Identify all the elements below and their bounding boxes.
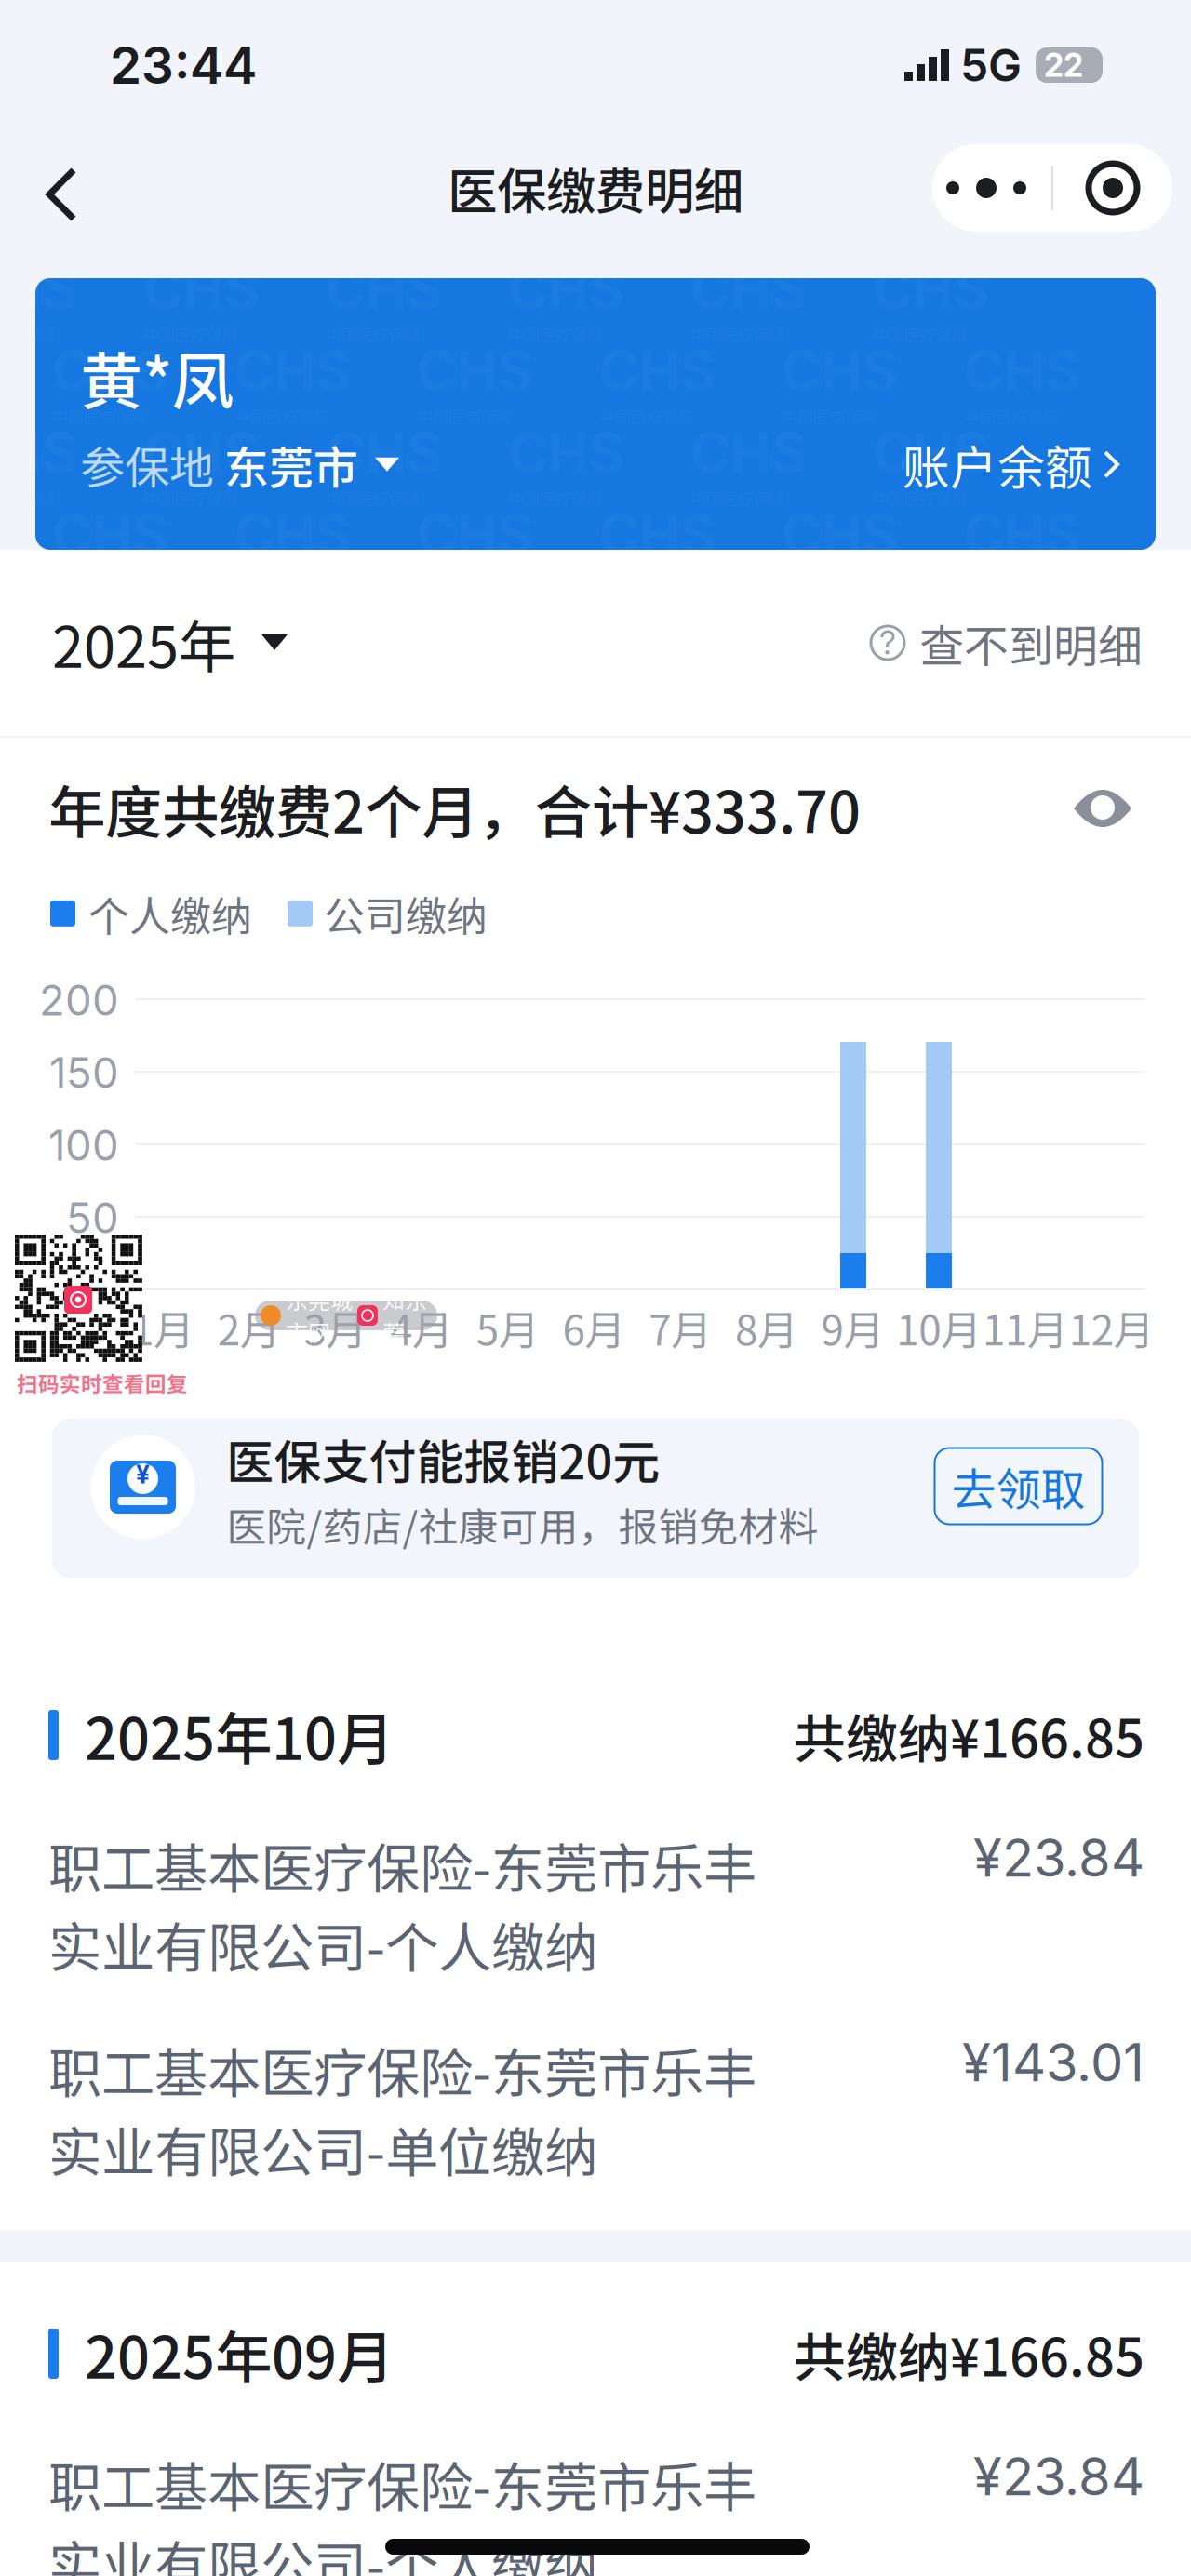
staticText: 2025年09月: [85, 2312, 394, 2395]
staticText: CHS: [873, 420, 989, 486]
staticText: CHS: [599, 501, 716, 567]
staticText: 扫码实时查看回复: [17, 1368, 188, 1398]
staticText: 2月: [217, 1298, 281, 1357]
staticText: 22: [1044, 46, 1083, 85]
staticText: 150: [49, 1047, 119, 1098]
staticText: 8月: [735, 1298, 798, 1357]
staticText: 50: [66, 1192, 119, 1243]
staticText: 知东莞: [382, 1283, 427, 1348]
staticText: 医保支付能报销20元: [227, 1425, 660, 1493]
staticText: CHS: [417, 501, 533, 567]
button[interactable]: ?: [869, 610, 1143, 675]
staticText: CHS: [52, 501, 168, 567]
staticText: 东莞城市网: [286, 1283, 353, 1348]
staticText: 中国医疗保障: [873, 487, 968, 510]
staticText: 中国医疗保障: [52, 405, 147, 428]
staticText: 中国医疗保障: [143, 487, 238, 510]
button[interactable]: 返回: [20, 137, 114, 239]
staticText: 职工基本医疗保险-东莞市乐丰 实业有限公司-个人缴纳: [48, 2445, 756, 2576]
staticText: 5月: [476, 1298, 539, 1357]
button[interactable]: 账户余额: [903, 430, 1120, 499]
staticText: 职工基本医疗保险-东莞市乐丰 实业有限公司-单位缴纳: [48, 2031, 756, 2187]
button[interactable]: ¥: [52, 1419, 1139, 1578]
staticText: 3月: [304, 1298, 367, 1357]
staticText: CHS: [0, 420, 77, 486]
button[interactable]: 参保地: [80, 432, 399, 497]
staticText: 中国医疗保障: [0, 323, 56, 346]
button[interactable]: 隐藏金额: [1072, 787, 1133, 830]
staticText: 中国医疗保障: [326, 487, 421, 510]
staticText: 参保地: [80, 432, 214, 497]
button[interactable]: 更多: [932, 144, 1051, 232]
staticText: 共缴纳¥166.85: [794, 1697, 1144, 1773]
staticText: 公司缴纳: [324, 884, 488, 943]
staticText: CHS: [234, 501, 351, 567]
staticText: CHS: [52, 338, 168, 404]
staticText: ?: [879, 623, 896, 662]
staticText: 23:44: [110, 34, 257, 96]
staticText: 账户余额: [903, 430, 1092, 499]
staticText: 年度共缴费2个月，合计¥333.70: [48, 767, 861, 850]
staticText: CHS: [0, 256, 77, 322]
staticText: 6月: [562, 1298, 626, 1357]
staticText: CHS: [508, 256, 624, 322]
staticText: 个人缴纳: [88, 884, 252, 943]
staticText: 4月: [390, 1298, 453, 1357]
staticText: ¥: [136, 1459, 150, 1489]
staticText: 11月: [983, 1298, 1068, 1357]
staticText: CHS: [873, 256, 989, 322]
staticText: 2025年: [52, 602, 235, 684]
staticText: 12月: [1069, 1298, 1154, 1357]
staticText: 10月: [896, 1298, 982, 1357]
staticText: 5G: [960, 38, 1022, 92]
staticText: 7月: [649, 1298, 712, 1357]
staticText: ¥23.84: [973, 2445, 1144, 2508]
staticText: CHS: [964, 501, 1080, 567]
staticText: CHS: [690, 256, 807, 322]
staticText: 200: [39, 975, 119, 1026]
button[interactable]: 关闭: [1053, 144, 1172, 232]
staticText: 医保缴费明细: [448, 152, 743, 224]
staticText: 9月: [821, 1298, 885, 1357]
staticText: 2025年10月: [85, 1694, 394, 1776]
staticText: 共缴纳¥166.85: [794, 2316, 1144, 2391]
staticText: CHS: [782, 501, 898, 567]
staticText: 东莞市: [214, 432, 358, 497]
staticText: 查不到明细: [919, 610, 1143, 675]
staticText: 职工基本医疗保险-东莞市乐丰 实业有限公司-个人缴纳: [48, 1826, 756, 1982]
staticText: CHS: [143, 420, 260, 486]
staticText: 去领取: [951, 1454, 1085, 1518]
staticText: 中国医疗保障: [0, 487, 56, 510]
button[interactable]: 2025年: [52, 602, 289, 684]
staticText: ¥143.01: [962, 2031, 1144, 2094]
staticText: 医院/药店/社康可用，报销免材料: [227, 1496, 818, 1553]
staticText: 黄*凤: [80, 332, 234, 422]
staticText: CHS: [326, 256, 442, 322]
staticText: CHS: [143, 256, 260, 322]
staticText: 100: [48, 1120, 119, 1171]
staticText: 1月: [131, 1298, 194, 1357]
